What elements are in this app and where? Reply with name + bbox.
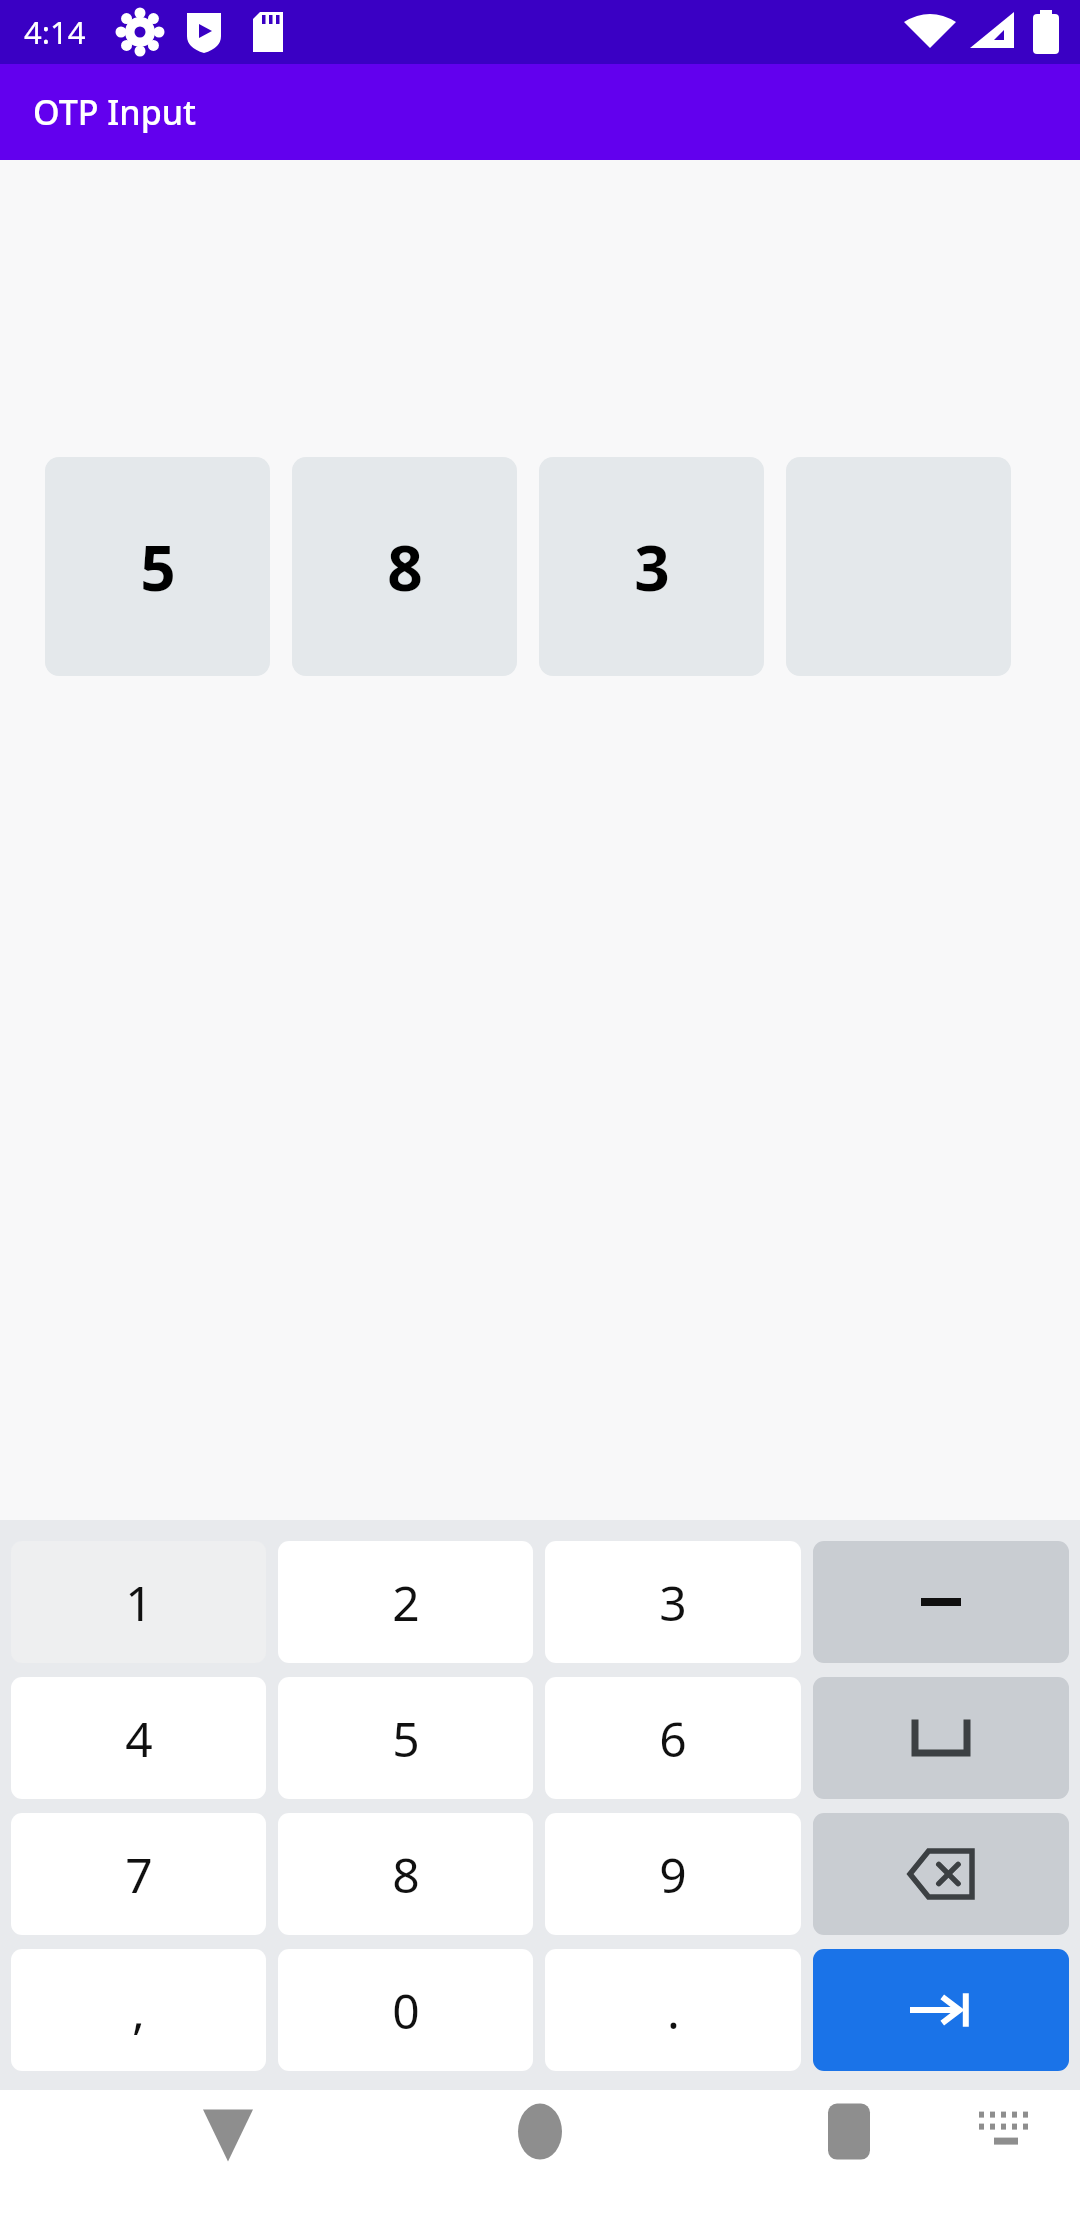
staticText: 4:14	[24, 11, 86, 53]
button[interactable]: 1	[11, 1541, 266, 1663]
button[interactable]: 9	[545, 1813, 801, 1935]
staticText: 9	[659, 1842, 687, 1907]
button[interactable]: Backspace	[813, 1813, 1069, 1935]
staticText: ,	[132, 1978, 145, 2043]
staticText: 2	[392, 1570, 420, 1635]
staticText: 5	[392, 1706, 420, 1771]
staticText: 3	[634, 525, 670, 609]
staticText: 6	[659, 1706, 687, 1771]
button[interactable]: ,	[11, 1949, 266, 2071]
staticText: 8	[387, 525, 423, 609]
staticText: 5	[140, 525, 176, 609]
staticText: 3	[659, 1570, 687, 1635]
staticText: 0	[392, 1978, 420, 2043]
staticText: 1	[125, 1570, 153, 1635]
button[interactable]: .	[545, 1949, 801, 2071]
button[interactable]: Space	[813, 1677, 1069, 1799]
staticText: .	[667, 1978, 680, 2043]
button[interactable]: 6	[545, 1677, 801, 1799]
button[interactable]: 8	[278, 1813, 533, 1935]
staticText: 8	[392, 1842, 420, 1907]
button[interactable]: 0	[278, 1949, 533, 2071]
button[interactable]: Next	[813, 1949, 1069, 2071]
staticText: 7	[125, 1842, 153, 1907]
button[interactable]: 3	[539, 457, 764, 676]
button[interactable]: 3	[545, 1541, 801, 1663]
button[interactable]: 8	[292, 457, 517, 676]
button[interactable]: 7	[11, 1813, 266, 1935]
button[interactable]: 5	[45, 457, 270, 676]
button[interactable]: 4	[11, 1677, 266, 1799]
button[interactable]: 2	[278, 1541, 533, 1663]
button[interactable]: Minus	[813, 1541, 1069, 1663]
staticText: 4	[125, 1706, 153, 1771]
staticText: OTP Input	[33, 89, 197, 135]
button[interactable]: 5	[278, 1677, 533, 1799]
